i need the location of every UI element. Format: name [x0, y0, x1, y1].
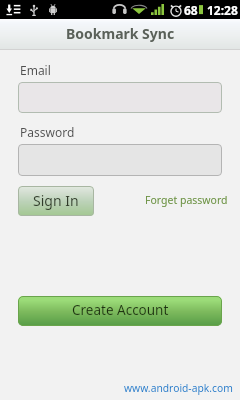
- staticText: Password: [20, 124, 75, 140]
- button[interactable]: Create Account: [18, 296, 222, 326]
- staticText: www.android-apk.com: [124, 381, 233, 395]
- button[interactable]: Forget password: [145, 193, 228, 207]
- button[interactable]: [18, 82, 222, 113]
- staticText: Forget password: [145, 193, 228, 207]
- button[interactable]: [18, 144, 222, 176]
- staticText: Sign In: [33, 191, 79, 210]
- staticText: 12:28: [207, 2, 238, 18]
- button[interactable]: Sign In: [18, 186, 94, 216]
- staticText: Email: [20, 62, 51, 78]
- staticText: Bookmark Sync: [66, 24, 175, 43]
- staticText: Create Account: [72, 301, 169, 319]
- staticText: 68: [184, 2, 198, 18]
